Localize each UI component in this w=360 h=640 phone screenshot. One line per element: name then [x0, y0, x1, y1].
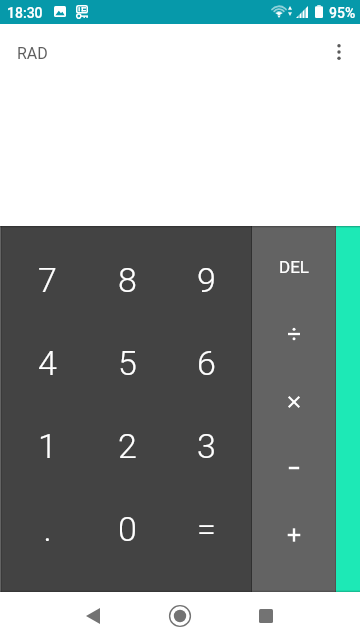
staticText: =	[197, 509, 216, 549]
staticText: 8	[118, 260, 137, 300]
staticText: RAD	[17, 44, 48, 63]
button[interactable]: 9	[167, 238, 246, 321]
button[interactable]: Multiply	[252, 368, 335, 435]
button[interactable]: Plus	[252, 501, 335, 568]
staticText: 4	[38, 343, 57, 383]
button[interactable]: 4	[8, 321, 87, 404]
button[interactable]: Divide	[252, 300, 335, 367]
staticText: 18:30	[7, 5, 43, 21]
button[interactable]: RAD	[0, 32, 65, 75]
button[interactable]: Home	[156, 592, 204, 640]
button[interactable]: 6	[167, 321, 246, 404]
button[interactable]: 8	[88, 238, 167, 321]
staticText: 1	[38, 426, 57, 466]
staticText: DEL	[279, 257, 309, 277]
button[interactable]: 7	[8, 238, 87, 321]
staticText: 0	[118, 509, 137, 549]
button[interactable]: 2	[88, 404, 167, 487]
button[interactable]: =	[167, 487, 246, 570]
button[interactable]: DEL	[252, 233, 335, 300]
staticText: 3	[197, 426, 216, 466]
button[interactable]: Recent apps	[242, 592, 290, 640]
button[interactable]: Minus	[252, 434, 335, 501]
button[interactable]: 5	[88, 321, 167, 404]
staticText: 2	[118, 426, 137, 466]
staticText: 7	[38, 260, 57, 300]
staticText: 5	[118, 343, 137, 383]
staticText: 95%	[329, 5, 356, 21]
button[interactable]: 1	[8, 404, 87, 487]
button[interactable]: Back	[69, 592, 117, 640]
button[interactable]: 3	[167, 404, 246, 487]
staticText: 6	[197, 343, 216, 383]
button[interactable]: 0	[88, 487, 167, 570]
staticText: .	[43, 509, 52, 549]
button[interactable]: More options	[319, 28, 359, 76]
button[interactable]: .	[8, 487, 87, 570]
staticText: 9	[197, 260, 216, 300]
